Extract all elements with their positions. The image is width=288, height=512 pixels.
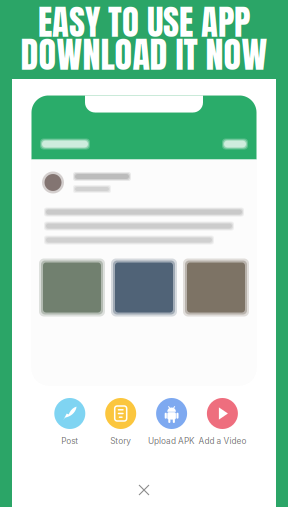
button[interactable]: Post <box>52 398 87 446</box>
button[interactable]: Close <box>128 474 160 506</box>
staticText: Story <box>110 436 131 446</box>
staticText: Upload APK <box>148 436 195 446</box>
staticText: DOWNLOAD IT NOW <box>20 27 267 82</box>
staticText: EASY TO USE APP <box>38 0 250 48</box>
button[interactable]: Story <box>103 398 138 446</box>
staticText: Add a Video <box>198 436 246 446</box>
button[interactable]: Add a Video <box>196 398 248 446</box>
button[interactable]: Upload APK <box>146 398 197 446</box>
staticText: Post <box>61 436 78 446</box>
